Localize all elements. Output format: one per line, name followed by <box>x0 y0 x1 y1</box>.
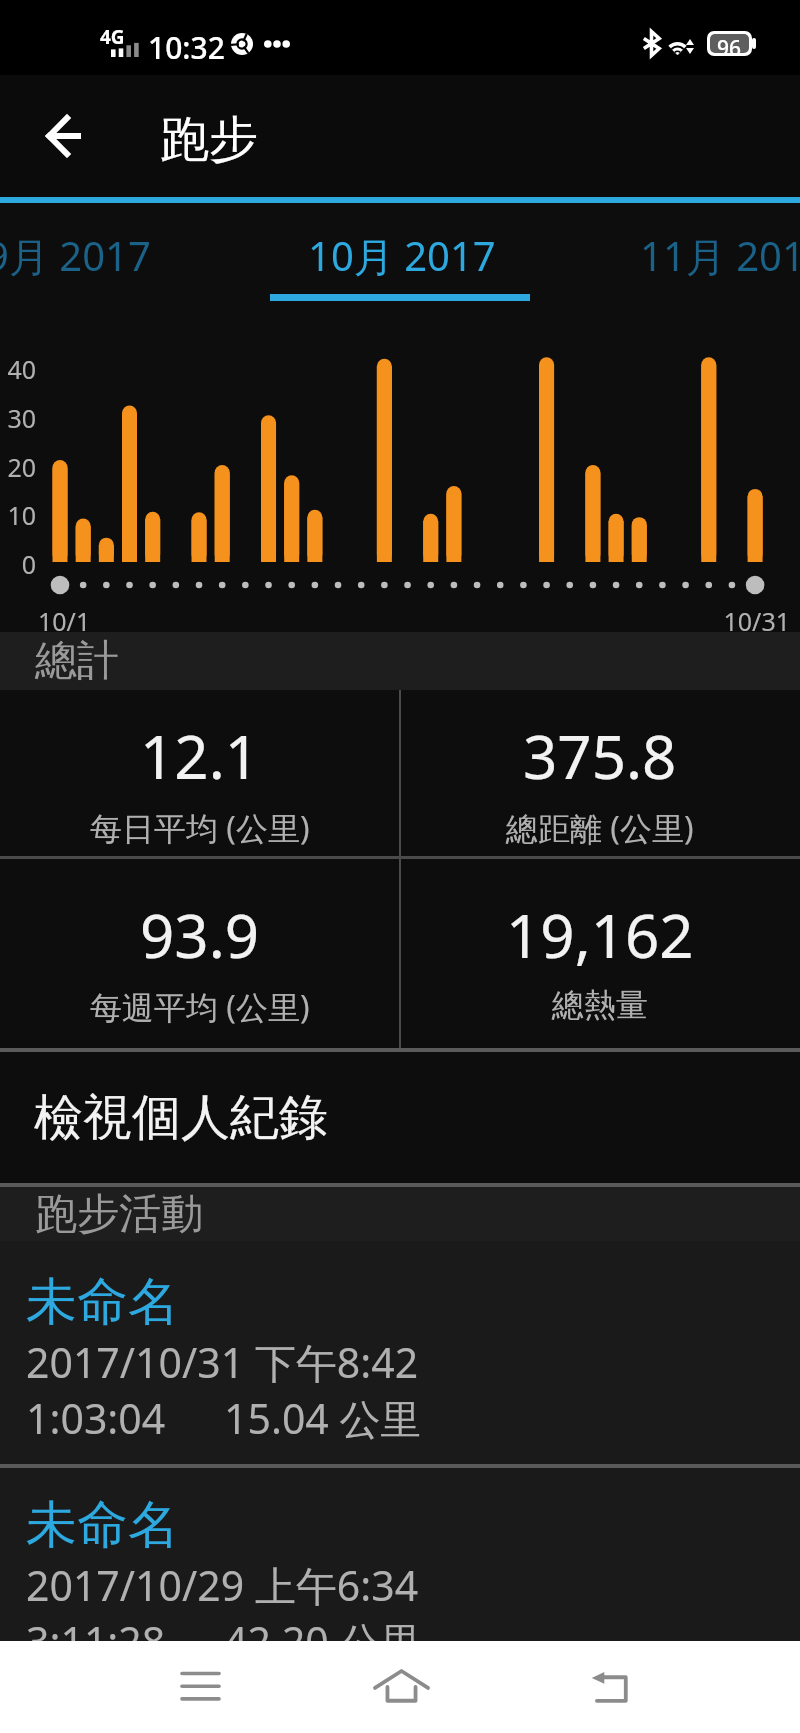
staticText: 20 <box>0 450 36 484</box>
staticText: 40 <box>0 352 36 386</box>
staticText: 1:03:04 <box>26 1390 166 1446</box>
button[interactable]: Home <box>335 1641 467 1733</box>
button[interactable]: Menu <box>134 1641 266 1733</box>
staticText: 12.1 <box>140 715 260 797</box>
button[interactable]: Back <box>543 1641 675 1733</box>
button[interactable]: 12.1 <box>0 690 400 856</box>
staticText: 3:11:28 <box>26 1613 166 1669</box>
staticText: 10/31 <box>0 604 790 638</box>
staticText: 每週平均 (公里) <box>90 985 310 1029</box>
staticText: 30 <box>0 401 36 435</box>
staticText: 4G <box>100 24 125 50</box>
staticText: 總計 <box>35 635 119 688</box>
staticText: 2017/10/31 下午8:42 <box>26 1334 419 1390</box>
staticText: 19,162 <box>506 894 694 976</box>
staticText: 15.04 公里 <box>224 1390 422 1446</box>
staticText: 10/1 <box>38 604 91 638</box>
staticText: 未命名 <box>26 1270 179 1334</box>
staticText: 跑步 <box>160 109 258 171</box>
staticText: 10月 2017 <box>308 228 496 283</box>
button[interactable]: Back <box>27 100 99 172</box>
staticText: 每日平均 (公里) <box>90 806 310 850</box>
staticText: 93.9 <box>140 894 260 976</box>
staticText: 2017/10/29 上午6:34 <box>26 1557 419 1613</box>
staticText: 9月 2017 <box>0 228 151 283</box>
button[interactable]: 未命名 <box>0 1464 800 1687</box>
staticText: 96 <box>717 34 742 53</box>
staticText: 總距離 (公里) <box>506 806 694 850</box>
staticText: 跑步活動 <box>35 1188 203 1241</box>
staticText: 10:32 <box>148 27 225 68</box>
staticText: 42.20 公里 <box>224 1613 422 1669</box>
button[interactable]: 未命名 <box>0 1241 800 1464</box>
button[interactable]: 檢視個人紀錄 <box>0 1052 800 1183</box>
button[interactable]: 93.9 <box>0 859 400 1048</box>
staticText: 11月 2017 <box>640 228 800 283</box>
staticText: 總熱量 <box>552 985 648 1025</box>
staticText: 10 <box>0 498 36 532</box>
staticText: 0 <box>0 547 36 581</box>
staticText: 檢視個人紀錄 <box>34 1087 328 1149</box>
staticText: 375.8 <box>523 715 677 797</box>
button[interactable]: 19,162 <box>400 859 800 1048</box>
staticText: 未命名 <box>26 1493 179 1557</box>
button[interactable]: 375.8 <box>400 690 800 856</box>
